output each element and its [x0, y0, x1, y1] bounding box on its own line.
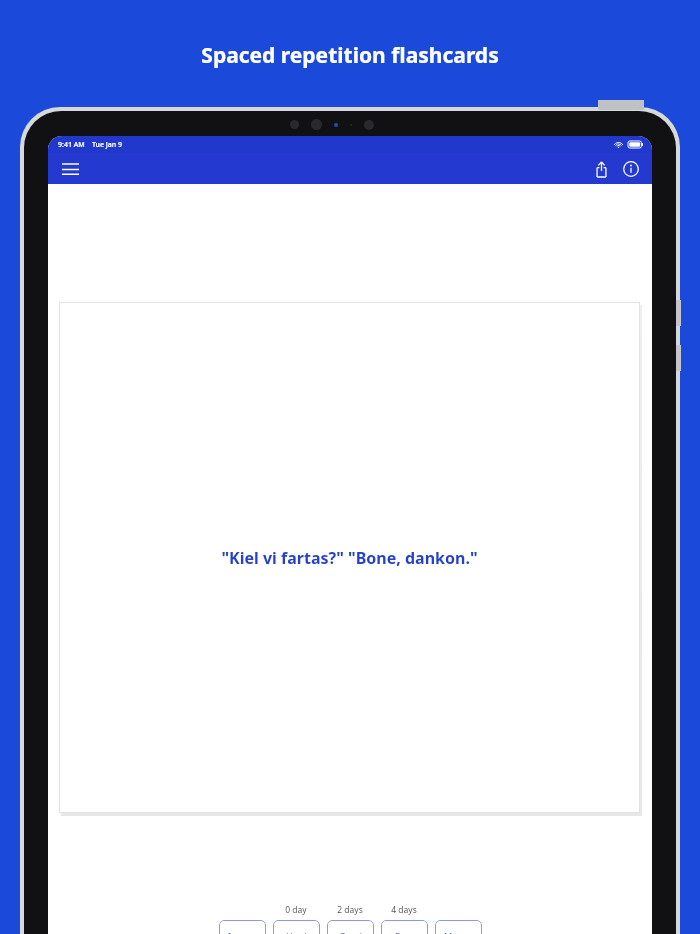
staticText: 0 day — [285, 904, 307, 916]
staticText: Tue Jan 9 — [92, 140, 123, 150]
button[interactable]: "Kiel vi fartas?" "Bone, dankon." — [59, 302, 640, 813]
staticText: Easy — [395, 930, 414, 934]
staticText: Good — [339, 930, 362, 934]
button[interactable]: Easy — [381, 920, 428, 934]
button[interactable]: Menu — [56, 155, 84, 183]
staticText: 2 days — [337, 904, 363, 916]
staticText: Spaced repetition flashcards — [201, 41, 499, 70]
button[interactable]: Master — [435, 920, 482, 934]
button[interactable]: Hard — [273, 920, 320, 934]
staticText: 9:41 AM — [58, 140, 85, 150]
button[interactable]: Info — [616, 154, 646, 184]
staticText: Ignore — [228, 930, 257, 934]
staticText: "Kiel vi fartas?" "Bone, dankon." — [221, 547, 478, 569]
staticText: Hard — [286, 930, 307, 934]
button[interactable]: Ignore — [219, 920, 266, 934]
button[interactable]: Share — [586, 154, 616, 184]
staticText: Master — [444, 930, 474, 934]
button[interactable]: Good — [327, 920, 374, 934]
staticText: 4 days — [391, 904, 417, 916]
